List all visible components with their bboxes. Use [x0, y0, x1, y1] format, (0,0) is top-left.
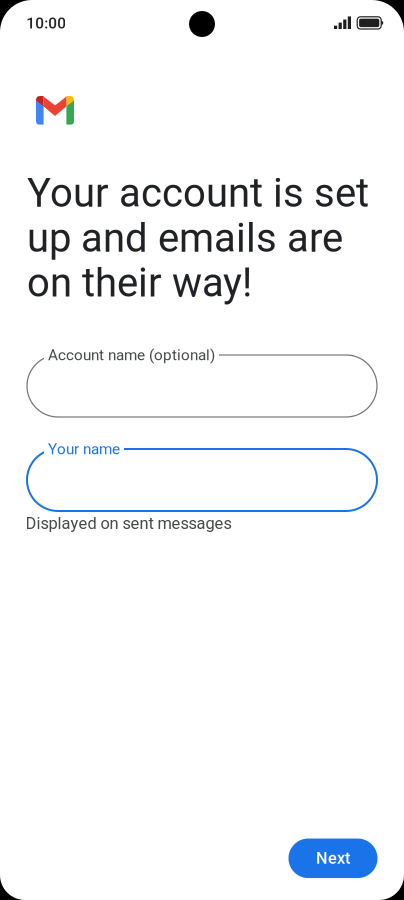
staticText: 10:00 — [26, 14, 66, 32]
staticText: Account name (optional) — [48, 346, 215, 364]
staticText: Your name — [48, 440, 120, 458]
button[interactable]: Next — [288, 838, 377, 878]
staticText: Displayed on sent messages — [25, 514, 231, 533]
staticText: Your account is set up and emails are on… — [27, 170, 369, 306]
button[interactable]: Account name (optional) — [27, 355, 377, 417]
button[interactable]: Your name — [27, 449, 377, 511]
staticText: Next — [316, 849, 350, 868]
